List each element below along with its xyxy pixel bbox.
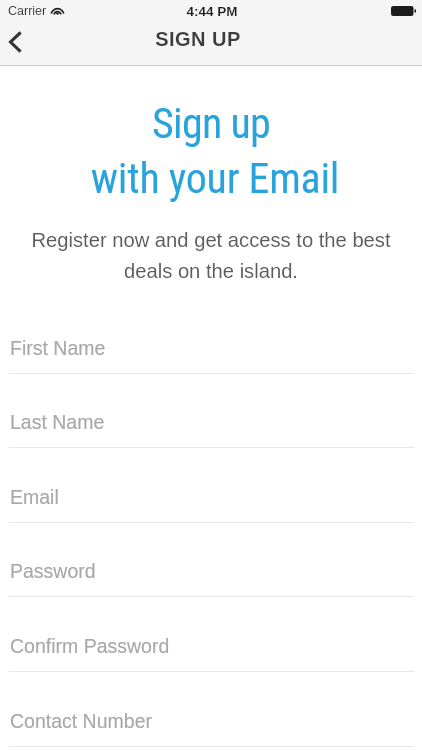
staticText: Carrier xyxy=(8,4,47,18)
staticText: First Name xyxy=(10,337,106,359)
staticText: Confirm Password xyxy=(10,635,170,657)
button[interactable]: First Name xyxy=(0,329,422,375)
button[interactable]: Contact Number xyxy=(0,702,422,748)
button[interactable]: Back xyxy=(0,22,35,62)
staticText: with your Email xyxy=(4,154,422,203)
staticText: Email xyxy=(10,486,59,508)
staticText: Register now and get access to the best … xyxy=(0,229,422,282)
other: Battery full xyxy=(391,6,416,16)
staticText: Last Name xyxy=(10,411,105,433)
staticText: 4:44 PM xyxy=(1,4,422,19)
staticText: Password xyxy=(10,560,96,582)
button[interactable]: Email xyxy=(0,478,422,524)
button[interactable]: Confirm Password xyxy=(0,627,422,673)
button[interactable]: Password xyxy=(0,552,422,598)
staticText: Contact Number xyxy=(10,710,152,732)
staticText: Sign up xyxy=(0,99,422,148)
staticText: SIGN UP xyxy=(0,28,409,50)
other: Wi-Fi signal xyxy=(51,5,64,15)
button[interactable]: Last Name xyxy=(0,403,422,449)
